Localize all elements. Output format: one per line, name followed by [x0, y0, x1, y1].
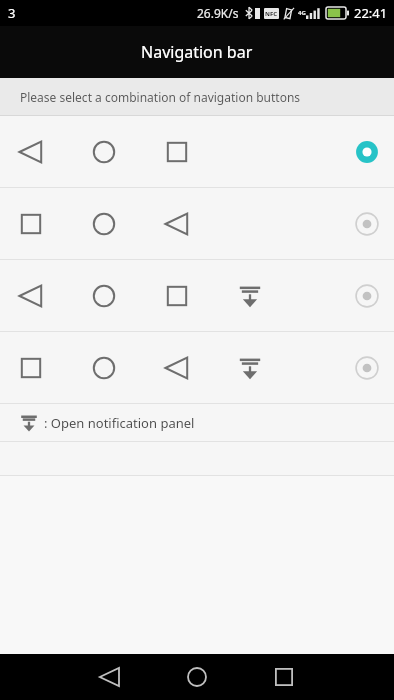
staticText: Navigation bar	[141, 41, 253, 63]
staticText: NFC	[265, 10, 278, 18]
button[interactable]	[0, 260, 394, 332]
button[interactable]	[0, 188, 394, 260]
button[interactable]: Recents	[246, 654, 322, 700]
button[interactable]: Home	[159, 654, 235, 700]
staticText: 26.9K/s	[197, 5, 239, 21]
staticText: 3	[8, 4, 16, 22]
staticText: 22:41	[354, 4, 388, 22]
button[interactable]	[0, 332, 394, 404]
staticText: Please select a combination of navigatio…	[20, 89, 301, 105]
staticText: : Open notification panel	[44, 414, 195, 432]
button[interactable]: Back	[72, 654, 148, 700]
button[interactable]	[0, 116, 394, 188]
staticText: 4G	[298, 9, 306, 17]
